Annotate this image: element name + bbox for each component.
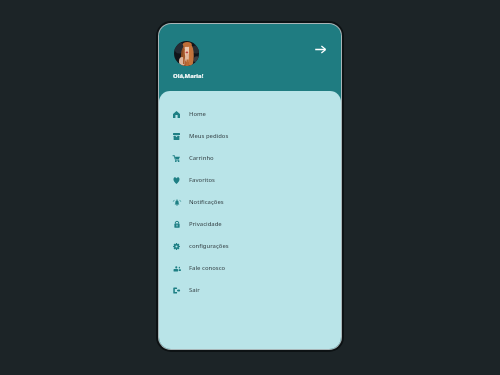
staticText: Sair	[189, 286, 200, 294]
button[interactable]: Meus pedidos	[159, 125, 341, 147]
staticText: Privacidade	[189, 220, 222, 228]
staticText: Home	[189, 110, 206, 118]
button[interactable]: Carrinho	[159, 147, 341, 169]
staticText: Favoritos	[189, 176, 215, 184]
staticText: configurações	[189, 242, 229, 250]
button[interactable]: Fale conosco	[159, 257, 341, 279]
staticText: Fale conosco	[189, 264, 226, 272]
staticText: Olá,Maria!	[173, 72, 204, 80]
button[interactable]: Sair	[159, 279, 341, 301]
staticText: Meus pedidos	[189, 132, 229, 140]
button[interactable]: Foto de perfil	[174, 41, 199, 66]
button[interactable]: Favoritos	[159, 169, 341, 191]
button[interactable]: configurações	[159, 235, 341, 257]
button[interactable]: Privacidade	[159, 213, 341, 235]
button[interactable]: Home	[159, 103, 341, 125]
staticText: Notificações	[189, 198, 224, 206]
button[interactable]: Notificações	[159, 191, 341, 213]
button[interactable]: Continuar	[307, 36, 333, 62]
staticText: Carrinho	[189, 154, 214, 162]
